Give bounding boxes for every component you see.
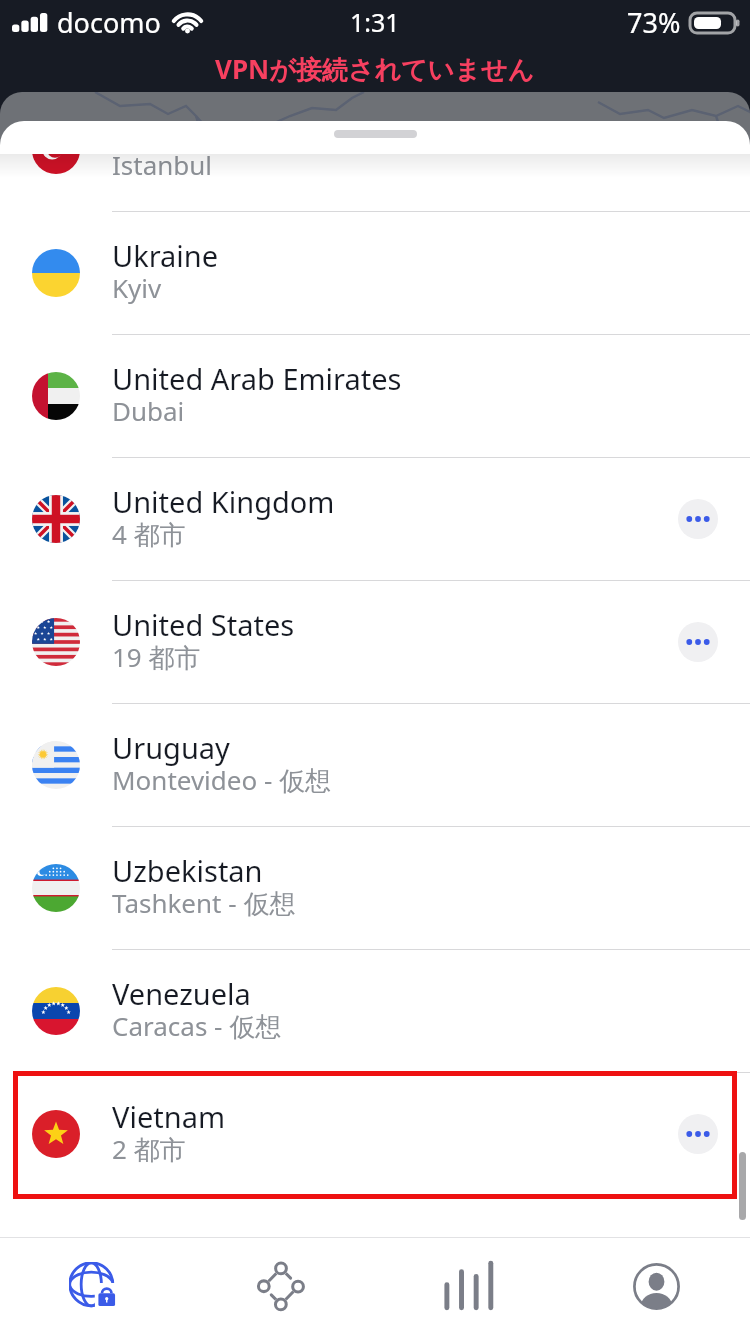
button[interactable]: Venezuela: [0, 950, 750, 1072]
button[interactable]: More options: [678, 1114, 718, 1154]
button[interactable]: United Kingdom: [0, 458, 750, 580]
staticText: 1:31: [350, 5, 400, 39]
button[interactable]: Ukraine: [0, 212, 750, 334]
button[interactable]: Uruguay: [0, 704, 750, 826]
staticText: Venezuela: [112, 974, 251, 1013]
staticText: Vietnam: [112, 1097, 226, 1136]
button[interactable]: Vietnam: [0, 1073, 750, 1195]
staticText: Dubai: [112, 393, 185, 428]
button[interactable]: More options: [678, 499, 718, 539]
staticText: Ukraine: [112, 236, 219, 275]
staticText: Caracas - 仮想: [112, 1008, 282, 1044]
staticText: 19 都市: [112, 639, 201, 675]
button[interactable]: United Arab Emirates: [0, 335, 750, 457]
staticText: 2 都市: [112, 1131, 186, 1167]
staticText: Tashkent - 仮想: [112, 885, 296, 921]
staticText: Uruguay: [112, 728, 230, 767]
staticText: VPNが接続されていません: [215, 51, 535, 87]
button[interactable]: More options: [678, 622, 718, 662]
staticText: United Arab Emirates: [112, 359, 402, 398]
staticText: United Kingdom: [112, 482, 335, 521]
button[interactable]: Stats: [374, 1238, 562, 1334]
staticText: Kyiv: [112, 270, 162, 305]
staticText: United States: [112, 605, 295, 644]
staticText: docomo: [57, 4, 161, 41]
staticText: Uzbekistan: [112, 851, 263, 890]
button[interactable]: VPN: [0, 1238, 187, 1334]
staticText: Montevideo - 仮想: [112, 762, 332, 798]
button[interactable]: Uzbekistan: [0, 827, 750, 949]
button[interactable]: Turkiye: [0, 154, 750, 211]
staticText: Istanbul: [112, 154, 213, 182]
staticText: 4 都市: [112, 516, 186, 552]
button[interactable]: Network: [187, 1238, 374, 1334]
button[interactable]: United States: [0, 581, 750, 703]
staticText: 73%: [627, 4, 681, 41]
button[interactable]: Account: [562, 1238, 750, 1334]
